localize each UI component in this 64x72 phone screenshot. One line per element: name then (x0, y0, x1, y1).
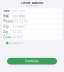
staticText: Sign up to get started (25, 5, 38, 7)
staticText: Jane Doe (13, 9, 26, 12)
staticText: Country (3, 35, 13, 39)
staticText: Create Account (21, 1, 43, 5)
staticText: 555 0134 (13, 20, 28, 23)
staticText: jane@mail (13, 14, 26, 18)
staticText: Portland (13, 25, 25, 28)
staticText: 97201 (13, 30, 23, 34)
button[interactable]: Email (2, 14, 62, 19)
staticText: City (3, 25, 8, 28)
button[interactable]: Zip (2, 29, 62, 35)
button[interactable]: Continue (7, 58, 57, 64)
button[interactable]: I agree to the Terms (0, 41, 64, 45)
button[interactable]: Phone (2, 19, 62, 24)
staticText: United (13, 35, 23, 39)
staticText: Name (3, 9, 10, 12)
button[interactable]: Country (2, 35, 62, 40)
staticText: Continue (25, 59, 39, 63)
staticText: Zip (3, 30, 8, 34)
staticText: Email (3, 14, 9, 18)
staticText: I agree to the Terms (9, 42, 22, 44)
staticText: Phone (3, 20, 13, 23)
button[interactable]: City (2, 24, 62, 29)
button[interactable]: Name (2, 8, 62, 14)
